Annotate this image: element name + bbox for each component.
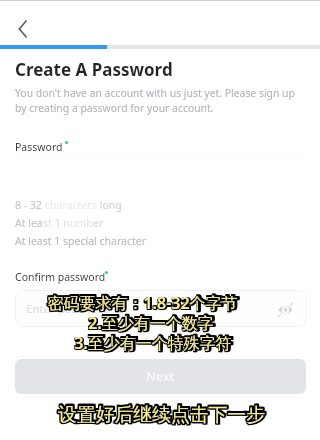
staticText: 2.至少有一个数字 <box>89 311 216 333</box>
staticText: You don't have an account with us just y… <box>15 86 295 115</box>
staticText: 3.至少有一个特殊字符 <box>75 332 234 354</box>
staticText: 设置好后继续点击下一步 <box>59 403 266 427</box>
staticText: Password <box>15 140 63 154</box>
button[interactable]: Enter password <box>15 290 306 327</box>
staticText: 2.至少有一个数字 <box>88 312 214 334</box>
staticText: 设置好后继续点击下一步 <box>58 402 265 426</box>
staticText: At lea <box>15 216 43 230</box>
staticText: 2.至少有一个数字 <box>88 311 215 333</box>
staticText: 密码要求有：1.8-32个字节 <box>47 292 238 314</box>
staticText: 3.至少有一个特殊字符 <box>75 331 234 353</box>
staticText: 3.至少有一个特殊字符 <box>74 332 232 354</box>
staticText: 3.至少有一个特殊字符 <box>73 331 232 353</box>
staticText: 设置好后继续点击下一步 <box>57 403 264 427</box>
staticText: Create A Password <box>15 58 173 81</box>
staticText: 设置好后继续点击下一步 <box>57 404 264 428</box>
staticText: 设置好后继续点击下一步 <box>58 404 265 428</box>
staticText: 设置好后继续点击下一步 <box>57 402 264 426</box>
staticText: 密码要求有：1.8-32个字节 <box>47 293 239 315</box>
staticText: 3.至少有一个特殊字符 <box>73 332 232 354</box>
staticText: 设置好后继续点击下一步 <box>59 404 266 428</box>
staticText: 密码要求有：1.8-32个字节 <box>46 292 238 314</box>
staticText: 设置好后继续点击下一步 <box>58 403 265 427</box>
staticText: long <box>97 198 122 212</box>
staticText: 设置好后继续点击下一步 <box>59 402 266 426</box>
staticText: 3.至少有一个特殊字符 <box>74 331 233 353</box>
button[interactable]: Show password <box>275 299 295 319</box>
staticText: 密码要求有：1.8-32个字节 <box>48 291 240 313</box>
staticText: Confirm password <box>15 270 106 284</box>
staticText: 密码要求有：1.8-32个字节 <box>48 292 240 314</box>
staticText: umb <box>70 216 93 230</box>
staticText: Enter password <box>26 301 111 317</box>
staticText: 3.至少有一个特殊字符 <box>75 333 234 355</box>
staticText: characters <box>45 198 97 212</box>
staticText: st 1 n <box>43 216 70 230</box>
staticText: 2.至少有一个数字 <box>87 313 214 335</box>
staticText: 密码要求有：1.8-32个字节 <box>47 291 239 313</box>
staticText: Next <box>146 368 175 385</box>
staticText: At least 1 special character <box>15 234 147 248</box>
staticText: 3.至少有一个特殊字符 <box>73 333 232 355</box>
staticText: 密码要求有：1.8-32个字节 <box>46 293 238 315</box>
staticText: 2.至少有一个数字 <box>87 312 214 334</box>
staticText: 2.至少有一个数字 <box>89 312 216 334</box>
staticText: 3.至少有一个特殊字符 <box>74 333 233 355</box>
button[interactable]: Back <box>7 13 39 45</box>
staticText: 2.至少有一个数字 <box>89 313 216 335</box>
staticText: 密码要求有：1.8-32个字节 <box>48 293 240 315</box>
staticText: er <box>93 216 104 230</box>
staticText: 8 - 32 <box>15 198 45 212</box>
staticText: 2.至少有一个数字 <box>87 311 214 333</box>
staticText: 密码要求有：1.8-32个字节 <box>46 291 238 313</box>
staticText: 2.至少有一个数字 <box>88 313 215 335</box>
